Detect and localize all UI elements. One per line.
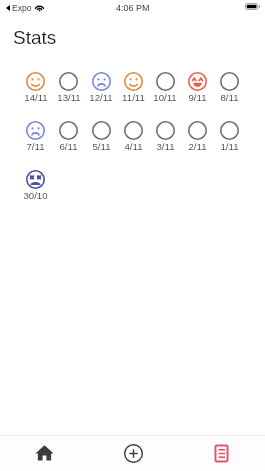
staticText: 3/11 bbox=[156, 141, 175, 152]
button[interactable]: Home bbox=[0, 436, 89, 471]
button[interactable]: 13/11 bbox=[52, 72, 85, 103]
staticText: 1/11 bbox=[220, 141, 239, 152]
staticText: 14/11 bbox=[24, 92, 48, 103]
staticText: 30/10 bbox=[23, 190, 48, 201]
button[interactable]: Stats bbox=[177, 436, 265, 471]
staticText: Expo bbox=[12, 3, 32, 12]
staticText: 12/11 bbox=[89, 92, 113, 103]
button[interactable]: Add entry bbox=[89, 436, 177, 471]
button[interactable]: 30/10 bbox=[19, 170, 52, 201]
staticText: 8/11 bbox=[220, 92, 239, 103]
staticText: 10/11 bbox=[153, 92, 177, 103]
button[interactable]: 3/11 bbox=[149, 121, 181, 152]
button[interactable]: 7/11 bbox=[19, 121, 52, 152]
button[interactable]: 6/11 bbox=[52, 121, 85, 152]
staticText: Stats bbox=[13, 27, 57, 48]
button[interactable]: 9/11 bbox=[181, 72, 213, 103]
staticText: 5/11 bbox=[92, 141, 111, 152]
staticText: 9/11 bbox=[188, 92, 207, 103]
button[interactable]: 11/11 bbox=[117, 72, 149, 103]
button[interactable]: 5/11 bbox=[85, 121, 117, 152]
staticText: 6/11 bbox=[59, 141, 78, 152]
button[interactable]: 14/11 bbox=[19, 72, 52, 103]
staticText: 13/11 bbox=[57, 92, 81, 103]
staticText: 4:06 PM bbox=[116, 3, 150, 13]
button[interactable]: 12/11 bbox=[85, 72, 117, 103]
button[interactable]: 2/11 bbox=[181, 121, 213, 152]
staticText: 2/11 bbox=[188, 141, 207, 152]
staticText: 7/11 bbox=[26, 141, 45, 152]
button[interactable]: 4/11 bbox=[117, 121, 149, 152]
button[interactable]: 1/11 bbox=[213, 121, 245, 152]
staticText: 4/11 bbox=[124, 141, 143, 152]
button[interactable]: 10/11 bbox=[149, 72, 181, 103]
staticText: 11/11 bbox=[122, 92, 145, 103]
button[interactable]: 8/11 bbox=[213, 72, 245, 103]
